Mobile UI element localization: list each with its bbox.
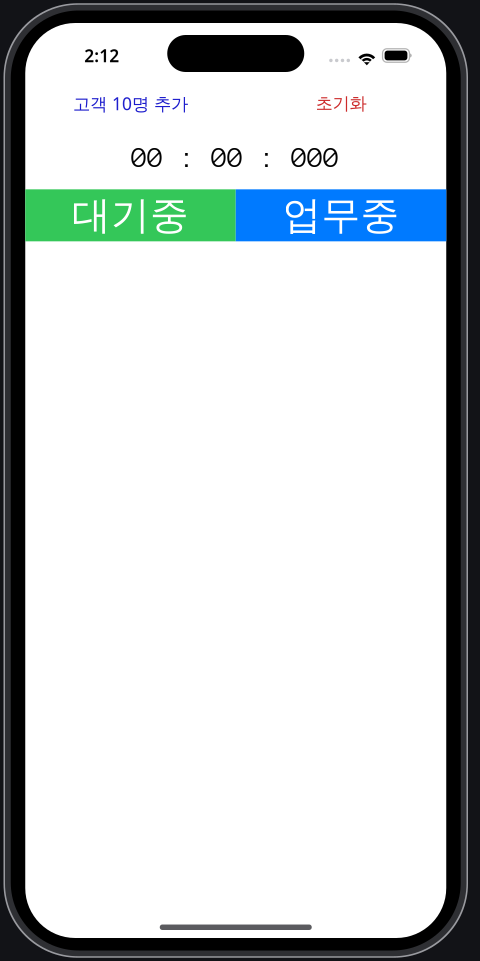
staticText: 00 : 00 : 000: [132, 143, 340, 172]
staticText: 초기화: [315, 93, 366, 114]
staticText: 업무중: [282, 192, 399, 239]
button[interactable]: 대기중: [25, 189, 236, 241]
button[interactable]: 초기화: [236, 86, 446, 121]
staticText: 고객 10명 추가: [73, 92, 188, 115]
staticText: 2:12: [84, 44, 119, 67]
button[interactable]: 업무중: [236, 189, 446, 241]
button[interactable]: 고객 10명 추가: [25, 85, 236, 122]
staticText: 대기중: [72, 192, 189, 239]
